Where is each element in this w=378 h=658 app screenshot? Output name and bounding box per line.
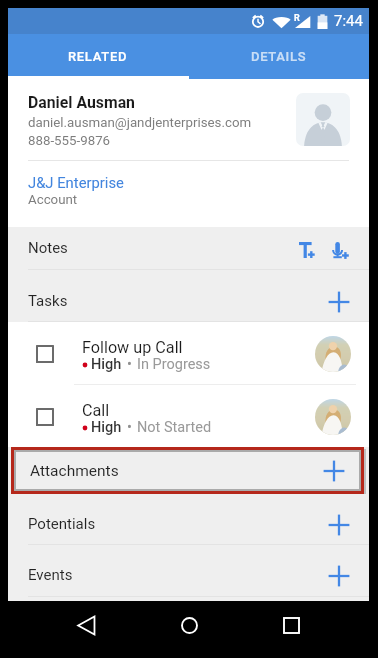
staticText: Call (82, 401, 110, 420)
button[interactable]: Complete Follow up Call (36, 345, 54, 363)
staticText: Potentials (28, 515, 96, 533)
staticText: RELATED (68, 49, 128, 64)
staticText: Daniel Ausman (28, 93, 135, 112)
button[interactable]: Add text note (296, 239, 320, 263)
staticText: High (91, 356, 122, 373)
button[interactable]: Add Events (326, 563, 352, 589)
button[interactable]: Recent apps (267, 601, 315, 649)
button[interactable]: Potentials (8, 494, 369, 545)
button[interactable]: Add Tasks (326, 289, 352, 315)
staticText: Account (28, 192, 78, 208)
staticText: • (127, 356, 132, 373)
staticText: Attachments (30, 462, 119, 480)
staticText: • (127, 419, 132, 436)
staticText: J&J Enterprise (28, 174, 124, 191)
button[interactable]: Back (62, 601, 110, 649)
button[interactable]: DETAILS (188, 34, 369, 79)
staticText: DETAILS (251, 49, 307, 64)
staticText: Tasks (28, 292, 68, 310)
staticText: In Progress (137, 356, 211, 373)
button[interactable]: Add voice note (327, 239, 351, 263)
button[interactable]: Tasks (8, 270, 369, 322)
staticText: 888-555-9876 (28, 133, 111, 149)
button[interactable]: Add Potentials (326, 512, 352, 538)
staticText: R (294, 13, 300, 24)
button[interactable]: Notes (8, 227, 369, 270)
button[interactable]: Attachments (16, 452, 359, 489)
staticText: 7:44 (334, 12, 363, 30)
staticText: Notes (28, 239, 68, 257)
button[interactable]: J&J Enterprise (8, 161, 369, 227)
button[interactable]: Home (165, 601, 213, 649)
button[interactable]: Events (8, 545, 369, 597)
staticText: Events (28, 566, 73, 584)
staticText: Not Started (137, 419, 212, 436)
staticText: High (91, 419, 122, 436)
button[interactable]: RELATED (8, 34, 188, 79)
button[interactable]: Complete Follow up Call (8, 322, 369, 385)
staticText: Follow up Call (82, 338, 183, 357)
button[interactable]: Complete Call (36, 408, 54, 426)
staticText: daniel.ausman@jandjenterprises.com (28, 115, 252, 131)
button[interactable]: Complete Call (8, 385, 369, 447)
